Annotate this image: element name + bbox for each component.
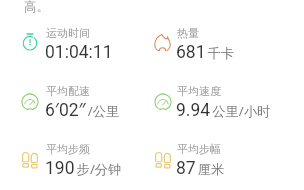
staticText: 平均步幅 (177, 142, 221, 156)
button[interactable] (19, 83, 156, 117)
staticText: 平均配速 (46, 84, 90, 98)
staticText: 平均步频 (46, 142, 90, 156)
button[interactable] (152, 83, 287, 117)
button[interactable] (20, 141, 156, 175)
staticText: 热量 (177, 26, 199, 40)
button[interactable] (152, 25, 287, 59)
staticText: 9.94 公里/小时 (176, 100, 271, 121)
button[interactable] (19, 25, 156, 59)
button[interactable] (153, 141, 287, 175)
staticText: 681 千卡 (176, 42, 235, 63)
staticText: 高。 (24, 0, 49, 15)
staticText: 01:04:11 (45, 42, 113, 63)
staticText: 运动时间 (46, 26, 90, 40)
staticText: 平均速度 (177, 84, 221, 98)
staticText: 87 厘米 (176, 158, 225, 179)
staticText: 190 步/分钟 (45, 158, 122, 179)
staticText: 6′02″ /公里 (45, 97, 120, 121)
